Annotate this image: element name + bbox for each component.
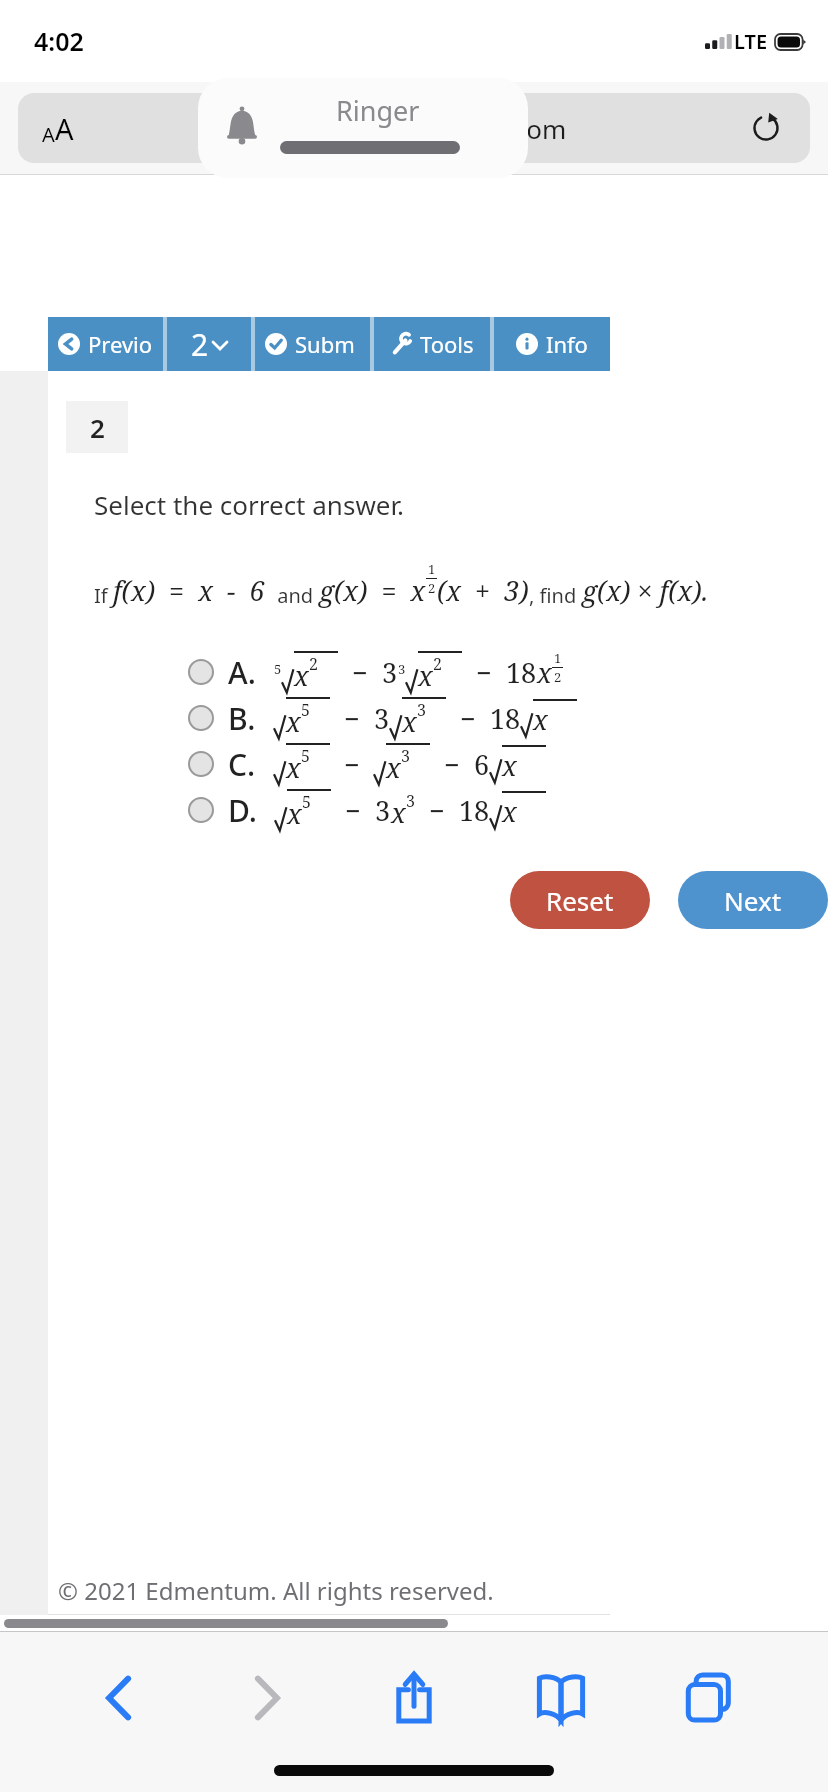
staticText: − [330,746,374,783]
button[interactable]: Reset [510,871,650,929]
staticText: 2 [90,410,105,445]
staticText: Submit Test [295,329,360,359]
button[interactable]: A. [188,649,828,695]
staticText: 3 [382,654,398,691]
staticText: 2 [428,579,436,597]
staticText: A. [228,652,256,693]
staticText: x [287,795,302,832]
staticText: x [286,749,301,786]
staticText: x [391,794,406,831]
button[interactable]: Share [366,1658,462,1738]
staticText: 4:02 [34,24,84,58]
staticText: B. [228,698,256,739]
staticText: − [446,700,490,737]
button[interactable]: Tools [374,317,490,371]
staticText: f(x) = x − 6 [113,572,272,609]
staticText: g(x) × f(x). [582,572,709,609]
button[interactable]: Bookmarks [513,1658,609,1738]
staticText: x [502,747,517,784]
staticText: A [42,121,55,148]
staticText: LTE [734,28,768,55]
staticText: 3 [417,699,426,721]
staticText: g(x) = x [319,572,426,609]
button[interactable]: Info [494,317,610,371]
button[interactable]: Tabs [661,1658,757,1738]
button[interactable]: C. [188,741,828,787]
staticText: 2 [433,653,442,675]
staticText: 5 [274,660,282,678]
staticText: 1 [428,560,436,578]
staticText: 3 [398,660,406,678]
staticText: Info [546,329,588,359]
staticText: x [286,703,301,740]
staticText: x [418,657,433,694]
staticText: 2 [309,653,318,675]
staticText: 2 [554,668,562,683]
staticText: 3 [401,745,410,767]
staticText: x [386,749,401,786]
staticText: x [502,793,517,830]
button[interactable]: Page settings [36,103,80,154]
staticText: 18 [506,654,537,691]
staticText: x [294,657,309,694]
staticText: 5 [301,745,310,767]
staticText: x [533,701,548,738]
staticText: If [94,582,113,609]
staticText: 6 [474,746,490,783]
staticText: Previous [88,329,153,359]
staticText: C. [228,744,256,785]
staticText: Next [724,883,782,918]
staticText: 1 [554,649,562,667]
staticText: Tools [420,329,474,359]
button[interactable]: B. [188,695,828,741]
staticText: 2 [191,324,209,365]
staticText: 3 [374,700,390,737]
button[interactable]: Forward [219,1658,315,1738]
staticText: A [55,109,74,148]
staticText: 3 [375,792,391,829]
staticText: 5 [302,791,311,813]
staticText: 5 [301,699,310,721]
staticText: − [415,792,459,829]
staticText: − [330,700,374,737]
staticText: − [430,746,474,783]
staticText: 3 [406,790,415,812]
staticText: − [338,654,382,691]
button[interactable]: 2 [167,317,251,371]
staticText: Select the correct answer. [94,487,405,522]
button[interactable]: Submit Test [255,317,370,371]
staticText: and [272,582,319,609]
staticText: x [402,703,417,740]
staticText: Reset [546,883,614,918]
button[interactable]: Reload [744,106,788,150]
button[interactable]: Page settings [18,93,810,163]
staticText: f2.app.edmentum.com [287,111,567,146]
button[interactable]: Next [678,871,828,929]
staticText: © 2021 Edmentum. All rights reserved. [58,1574,494,1607]
staticText: , find [529,582,582,609]
staticText: − [331,792,375,829]
staticText: Ringer [336,92,420,129]
button[interactable]: Previous [48,317,163,371]
button[interactable]: Back [71,1658,167,1738]
staticText: D. [228,790,257,831]
staticText: x [537,654,552,691]
staticText: − [462,654,506,691]
staticText: 18 [490,700,521,737]
staticText: (x + 3) [437,572,529,609]
staticText: 18 [459,792,490,829]
button[interactable]: D. [188,787,828,833]
